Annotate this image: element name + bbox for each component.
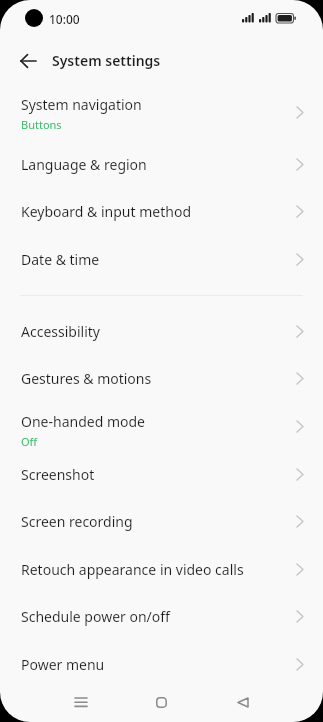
staticText: Buttons [21,117,62,132]
staticText: Retouch appearance in video calls [21,560,244,579]
button[interactable]: System navigation [0,85,323,140]
staticText: Schedule power on/off [21,607,170,626]
button[interactable]: One-handed mode [0,402,323,450]
staticText: Power menu [21,655,105,674]
button[interactable]: Gestures & motions [0,355,323,402]
button[interactable]: Retouch appearance in video calls [0,545,323,593]
staticText: Gestures & motions [21,369,152,388]
staticText: System navigation [21,95,142,114]
button[interactable]: Language & region [0,140,323,188]
button[interactable]: Date & time [0,235,323,283]
staticText: Off [21,434,38,449]
staticText: Date & time [21,250,100,269]
staticText: Screenshot [21,465,95,484]
button[interactable]: Screenshot [0,450,323,498]
staticText: 10:00 [49,11,80,27]
staticText: Accessibility [21,322,100,341]
button[interactable] [121,688,202,722]
staticText: Keyboard & input method [21,202,191,221]
staticText: System settings [52,51,161,70]
button[interactable] [40,688,121,722]
button[interactable]: Keyboard & input method [0,188,323,235]
button[interactable]: Power menu [0,640,323,688]
staticText: Language & region [21,155,147,174]
staticText: One-handed mode [21,412,145,431]
button[interactable] [12,45,44,77]
staticText: Screen recording [21,512,133,531]
button[interactable]: Accessibility [0,307,323,355]
button[interactable]: Screen recording [0,498,323,545]
button[interactable] [202,688,283,722]
button[interactable]: Schedule power on/off [0,593,323,640]
